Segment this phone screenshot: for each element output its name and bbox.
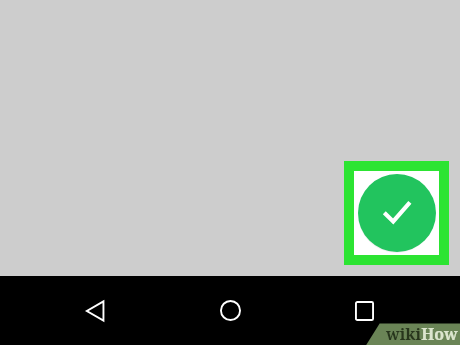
button[interactable]: Recent apps	[307, 276, 460, 345]
staticText: wikiHow	[386, 323, 458, 345]
button[interactable]: Home	[154, 276, 307, 345]
button[interactable]: Confirm	[358, 174, 436, 252]
button[interactable]: Back	[0, 276, 154, 345]
